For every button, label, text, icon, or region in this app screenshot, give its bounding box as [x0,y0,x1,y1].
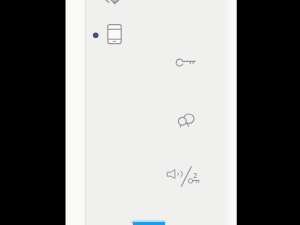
staticText: 2 [193,170,198,180]
button[interactable] [131,219,166,225]
